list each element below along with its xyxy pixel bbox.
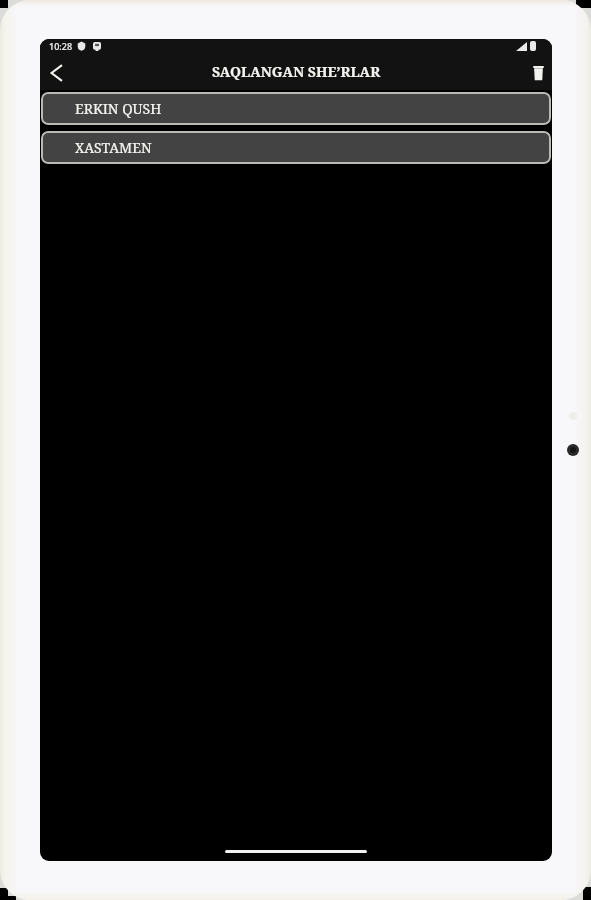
staticText: XASTAMEN <box>75 138 152 157</box>
staticText: ERKIN QUSH <box>75 99 162 118</box>
button[interactable]: Delete <box>524 56 552 89</box>
button[interactable]: Back <box>40 56 72 89</box>
button[interactable]: ERKIN QUSH <box>41 92 551 125</box>
staticText: SAQLANGAN SHE’RLAR <box>212 62 381 81</box>
button[interactable]: XASTAMEN <box>41 131 551 164</box>
staticText: 10:28 <box>49 40 73 52</box>
